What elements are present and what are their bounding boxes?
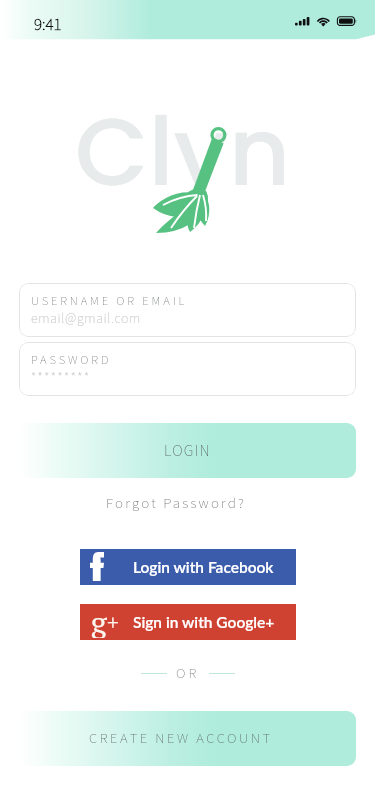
button[interactable]: PASSWORD (19, 342, 356, 396)
staticText: Login with Facebook (133, 558, 274, 577)
other: Clyn logo (150, 126, 240, 241)
button[interactable]: USERNAME OR EMAIL (19, 283, 356, 337)
staticText: + (107, 607, 119, 636)
button[interactable]: Login with Facebook (80, 549, 296, 585)
button[interactable]: g (80, 604, 296, 640)
staticText: Clyn (75, 85, 291, 218)
staticText: OR (176, 663, 200, 684)
staticText: g (91, 602, 107, 638)
button[interactable]: LOGIN (19, 423, 356, 478)
staticText: 9:41 (34, 13, 62, 37)
button[interactable]: Forgot Password? (106, 493, 247, 514)
staticText: Sign in with Google+ (133, 613, 275, 632)
staticText: PASSWORD (31, 351, 112, 369)
staticText: ********* (31, 369, 91, 388)
staticText: LOGIN (164, 440, 211, 463)
staticText: USERNAME OR EMAIL (31, 292, 188, 310)
staticText: email@gmail.com (31, 309, 141, 329)
staticText: CREATE NEW ACCOUNT (89, 728, 273, 749)
button[interactable]: CREATE NEW ACCOUNT (19, 711, 356, 766)
